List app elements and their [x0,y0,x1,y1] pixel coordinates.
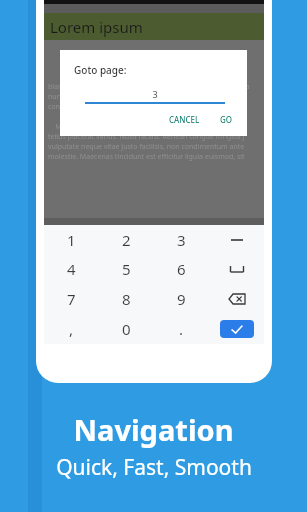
button[interactable]: 8 [99,284,154,314]
staticText: Lorem ipsum [50,17,143,37]
staticText: 3 [177,230,186,250]
staticText: 9 [177,289,186,309]
staticText: , [69,319,74,339]
button[interactable]: GO [214,111,239,128]
button[interactable]: 7 [44,284,99,314]
staticText: 4 [67,259,76,279]
staticText: 7 [67,289,76,309]
button[interactable]: 1 [44,225,99,254]
staticText: CANCEL [169,114,200,125]
button[interactable]: 3 [154,225,209,254]
button[interactable]: 4 [44,254,99,284]
staticText: . [179,319,184,339]
staticText: Goto page: [74,63,127,77]
staticText: condimentum. Morbi in ullamcorper elit. … [48,102,248,112]
staticText: Quick, Fast, Smooth [56,453,252,482]
button[interactable]: , [44,314,99,344]
staticText: molestie. Maecenas tincidunt est efficit… [48,152,245,162]
button[interactable]: 2 [99,225,154,254]
button[interactable]: . [154,314,209,344]
button[interactable]: CANCEL [163,111,206,128]
staticText: 8 [122,289,131,309]
button[interactable]: Minus [209,225,264,254]
button[interactable]: 6 [154,254,209,284]
button[interactable]: Space [209,254,264,284]
staticText: 2 [122,230,131,250]
staticText: 0 [122,319,131,339]
staticText: nunc vehicula vitae. Nulla eget justo in… [48,92,246,102]
staticText: 5 [122,259,131,279]
staticText: GO [220,114,233,125]
staticText: blandit. Integer lacinia ante ac libero … [48,82,250,92]
button[interactable]: 9 [154,284,209,314]
staticText: tellus placerat varius. Nulla facilisi. … [48,132,245,142]
button[interactable]: OK [209,314,264,344]
button[interactable]: 5 [99,254,154,284]
staticText: 6 [177,259,186,279]
staticText: Maecenas mauris lectus, lobortis et puru… [48,122,242,132]
button[interactable]: Backspace [209,284,264,314]
staticText: 3 [85,88,225,100]
button[interactable]: 0 [99,314,154,344]
staticText: Navigation [73,410,234,449]
staticText: vulputate neque vitae justo facilisis, n… [48,142,245,152]
staticText: 1 [67,230,76,250]
